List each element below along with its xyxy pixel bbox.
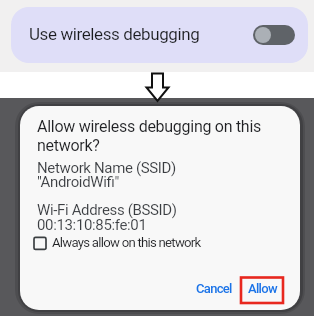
button[interactable]: Use wireless debugging <box>11 7 308 63</box>
staticText: Use wireless debugging <box>29 24 200 44</box>
button[interactable]: Always allow on this network <box>33 235 201 250</box>
staticText: Always allow on this network <box>52 235 201 250</box>
staticText: Wi-Fi Address (BSSID) 00:13:10:85:fe:01 <box>37 201 177 233</box>
staticText: Network Name (SSID) "AndroidWifi" <box>37 159 176 191</box>
button[interactable]: Allow <box>248 281 277 296</box>
staticText: Allow wireless debugging on this network… <box>37 117 261 155</box>
button[interactable] <box>253 25 295 45</box>
button[interactable]: Cancel <box>196 281 232 296</box>
